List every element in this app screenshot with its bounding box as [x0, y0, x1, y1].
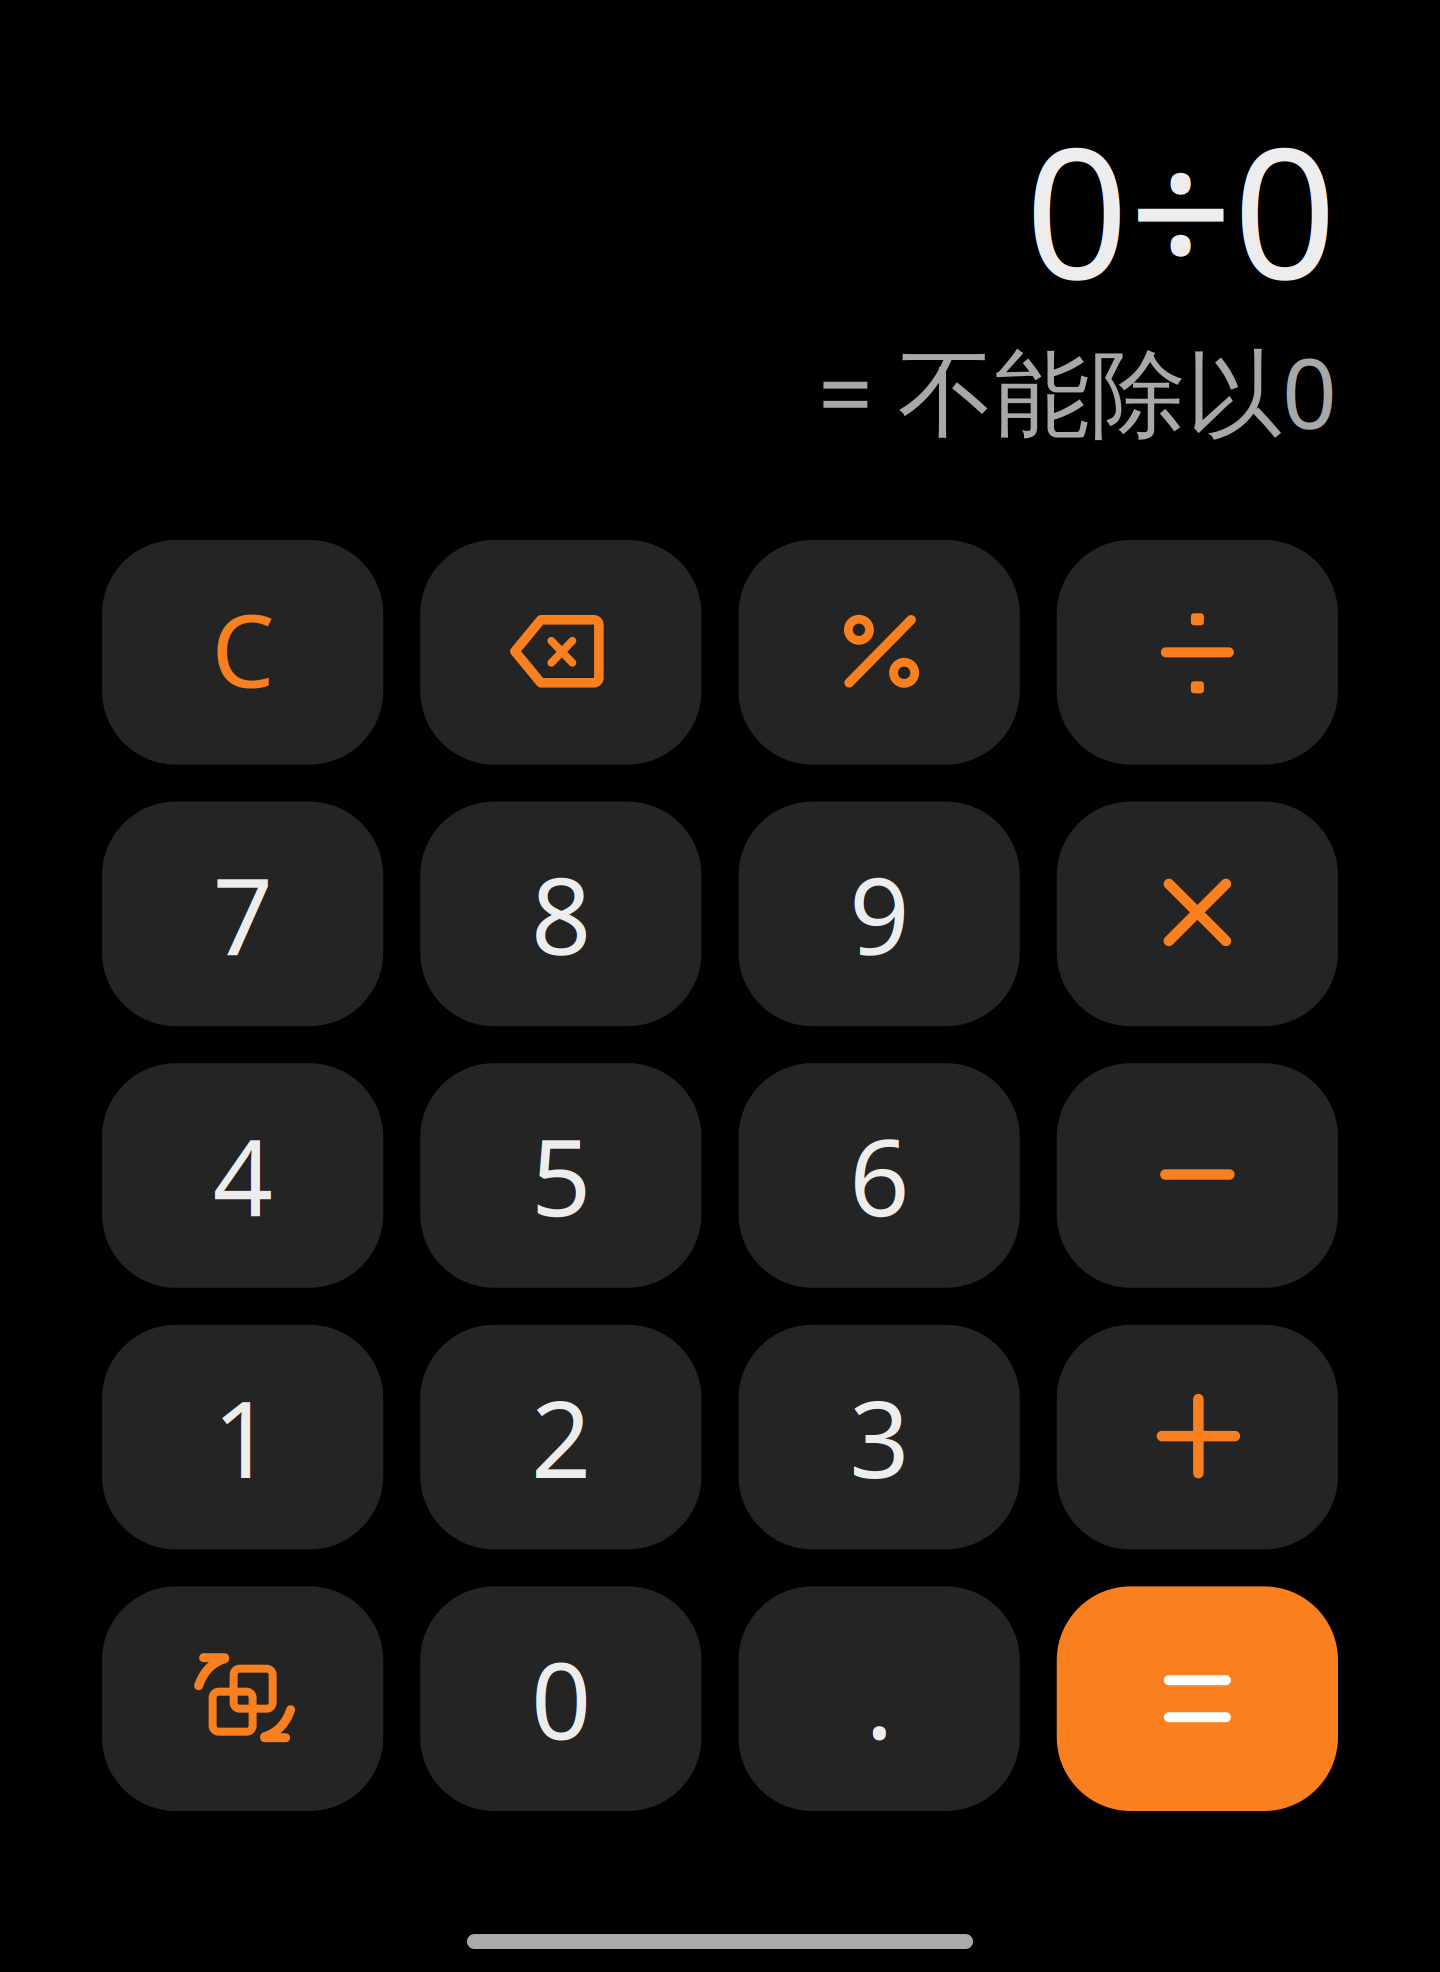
button[interactable]: 9 [738, 802, 1020, 1026]
staticText: = 不能除以0 [818, 328, 1337, 455]
button[interactable]: 5 [420, 1063, 701, 1288]
button[interactable]: 0 [420, 1586, 701, 1811]
staticText: C [211, 582, 274, 715]
staticText: 8 [531, 844, 591, 984]
staticText: 6 [849, 1106, 909, 1245]
button[interactable]: 8 [420, 802, 701, 1026]
staticText: 0÷0 [1025, 88, 1337, 329]
button[interactable]: Multiply [1057, 802, 1338, 1026]
button[interactable]: Convert [102, 1586, 383, 1811]
staticText: 7 [213, 844, 273, 984]
staticText: 1 [213, 1367, 273, 1507]
button[interactable]: 2 [420, 1325, 701, 1549]
button[interactable]: 7 [102, 802, 383, 1026]
staticText: 0 [531, 1629, 591, 1769]
button[interactable]: Subtract [1057, 1063, 1338, 1288]
button[interactable]: C [102, 540, 383, 765]
staticText: 9 [849, 844, 909, 984]
staticText: 2 [531, 1367, 591, 1507]
button[interactable]: Divide [1057, 540, 1338, 765]
button[interactable]: Add [1057, 1325, 1338, 1549]
staticText: . [865, 1629, 893, 1769]
button[interactable]: 3 [738, 1325, 1020, 1549]
staticText: 3 [849, 1367, 909, 1507]
button[interactable]: Percent [738, 540, 1020, 765]
button[interactable]: 6 [738, 1063, 1020, 1288]
button[interactable]: . [738, 1586, 1020, 1811]
staticText: 4 [213, 1106, 273, 1245]
button[interactable]: 4 [102, 1063, 383, 1288]
staticText: 5 [531, 1106, 591, 1245]
button[interactable]: 1 [102, 1325, 383, 1549]
button[interactable]: Delete [420, 540, 701, 765]
button[interactable]: Equals [1057, 1586, 1338, 1811]
